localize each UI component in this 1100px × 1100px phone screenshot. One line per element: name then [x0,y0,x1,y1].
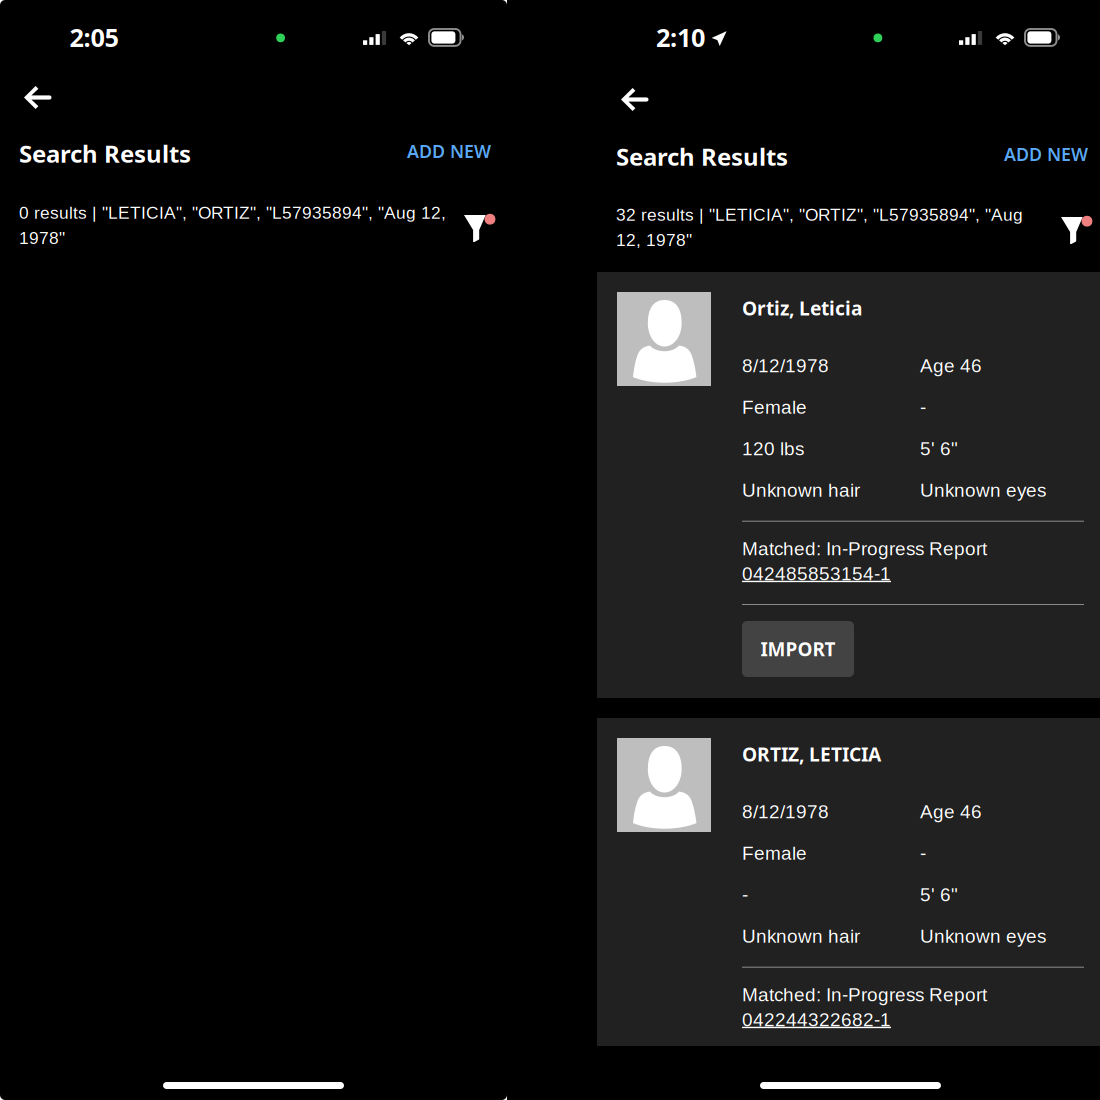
button[interactable]: Back [24,86,53,110]
staticText: Search Results [616,140,788,173]
staticText: 120 lbs [742,438,804,459]
staticText: 0 results | "LETICIA", "ORTIZ", "L579358… [19,203,446,222]
staticText: 32 results | "LETICIA", "ORTIZ", "L57935… [616,205,1023,224]
button[interactable]: ORTIZ, LETICIA [597,718,1100,1046]
button[interactable]: Filter [1061,217,1093,244]
staticText: ORTIZ, LETICIA [742,741,881,767]
staticText: 042244322682-1 [742,1009,891,1030]
button[interactable]: ADD NEW [1004,142,1088,166]
staticText: - [920,396,926,418]
staticText: Unknown hair [742,925,860,947]
staticText: IMPORT [760,636,835,662]
staticText: 12, 1978" [616,230,692,250]
button[interactable]: Ortiz, Leticia [597,272,1100,698]
button[interactable]: ADD NEW [407,139,491,163]
staticText: 5' 6" [920,884,958,905]
button[interactable]: 042485853154-1 [742,563,891,584]
button[interactable]: Back [621,88,650,112]
staticText: ADD NEW [1004,142,1088,166]
staticText: Unknown hair [742,479,860,501]
staticText: Female [742,842,807,864]
staticText: 2:05 [69,20,118,54]
staticText: Ortiz, Leticia [742,295,863,321]
staticText: - [742,884,748,905]
staticText: Matched: In-Progress Report [742,538,987,559]
staticText: Search Results [19,137,191,170]
staticText: 8/12/1978 [742,355,829,376]
staticText: Female [742,396,807,418]
staticText: 5' 6" [920,438,958,459]
staticText: 042485853154-1 [742,563,891,584]
button[interactable]: IMPORT [742,621,854,677]
staticText: - [920,842,926,864]
button[interactable]: 042244322682-1 [742,1009,891,1030]
button[interactable]: Filter [464,215,496,242]
staticText: Matched: In-Progress Report [742,984,987,1005]
staticText: ADD NEW [407,139,491,163]
staticText: Age 46 [920,801,982,822]
staticText: Unknown eyes [920,479,1046,501]
staticText: Unknown eyes [920,925,1046,947]
staticText: 1978" [19,228,65,248]
staticText: 8/12/1978 [742,801,829,822]
staticText: 2:10 [656,20,705,54]
staticText: Age 46 [920,355,982,376]
